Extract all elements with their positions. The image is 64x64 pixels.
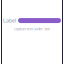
staticText: caption text under bar <box>13 26 50 31</box>
staticText: Label <box>3 17 16 24</box>
